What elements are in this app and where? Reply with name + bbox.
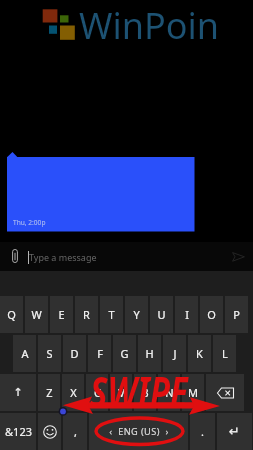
staticText: W bbox=[31, 307, 42, 322]
staticText: &123 bbox=[5, 424, 32, 439]
button[interactable]: U bbox=[150, 296, 173, 333]
button[interactable]: P bbox=[225, 296, 248, 333]
button[interactable]: J bbox=[163, 335, 186, 372]
staticText: , bbox=[74, 424, 77, 439]
button[interactable]: ‹ ENG (US) › bbox=[89, 413, 188, 450]
staticText: ‹ ENG (US) › bbox=[109, 425, 169, 438]
staticText: O bbox=[207, 307, 216, 322]
button[interactable]: Backspace bbox=[206, 374, 244, 411]
staticText: L bbox=[222, 346, 228, 361]
button[interactable]: Z bbox=[38, 374, 60, 411]
button[interactable]: L bbox=[213, 335, 236, 372]
button[interactable]: D bbox=[63, 335, 86, 372]
staticText: S bbox=[46, 346, 53, 361]
button[interactable]: T bbox=[100, 296, 123, 333]
staticText: Y bbox=[133, 307, 140, 322]
button[interactable]: A bbox=[13, 335, 36, 372]
button[interactable]: O bbox=[200, 296, 223, 333]
button[interactable]: E bbox=[50, 296, 73, 333]
staticText: Type a message bbox=[29, 251, 97, 263]
staticText: U bbox=[157, 307, 166, 322]
button[interactable]: W bbox=[25, 296, 48, 333]
button[interactable]: B bbox=[134, 374, 156, 411]
button[interactable]: ↵ bbox=[217, 413, 252, 450]
staticText: R bbox=[83, 307, 90, 322]
button[interactable]: . bbox=[190, 413, 215, 450]
staticText: K bbox=[196, 346, 203, 361]
button[interactable]: I bbox=[175, 296, 198, 333]
staticText: V bbox=[118, 385, 125, 400]
staticText: G bbox=[120, 346, 129, 361]
staticText: T bbox=[108, 307, 115, 322]
button[interactable]: Attach file bbox=[2, 243, 28, 269]
staticText: H bbox=[145, 346, 154, 361]
button[interactable]: G bbox=[113, 335, 136, 372]
button[interactable]: F bbox=[88, 335, 111, 372]
button[interactable]: H bbox=[138, 335, 161, 372]
button[interactable]: Y bbox=[125, 296, 148, 333]
staticText: P bbox=[233, 307, 240, 322]
staticText: Z bbox=[46, 385, 53, 400]
staticText: C bbox=[94, 385, 101, 400]
staticText: SWIPE bbox=[90, 362, 188, 421]
staticText: X bbox=[70, 385, 77, 400]
staticText: ↑ bbox=[13, 386, 23, 399]
staticText: E bbox=[58, 307, 65, 322]
button[interactable]: Emoji bbox=[38, 413, 61, 450]
staticText: Thu, 2:00p bbox=[13, 218, 46, 227]
button[interactable]: S bbox=[38, 335, 61, 372]
staticText: J bbox=[173, 346, 177, 361]
button[interactable]: N bbox=[158, 374, 180, 411]
button[interactable]: C bbox=[86, 374, 108, 411]
button[interactable]: K bbox=[188, 335, 211, 372]
staticText: WinPoin bbox=[79, 1, 220, 50]
staticText: B bbox=[141, 385, 149, 400]
button[interactable]: , bbox=[63, 413, 87, 450]
button[interactable]: R bbox=[75, 296, 98, 333]
staticText: I bbox=[185, 307, 189, 322]
staticText: ↵ bbox=[229, 424, 240, 439]
staticText: A bbox=[21, 346, 29, 361]
button[interactable]: M bbox=[182, 374, 204, 411]
button[interactable]: Send bbox=[225, 243, 252, 270]
button[interactable]: ↑ bbox=[0, 374, 36, 411]
button[interactable]: &123 bbox=[0, 413, 36, 450]
staticText: F bbox=[97, 346, 103, 361]
button[interactable]: V bbox=[110, 374, 132, 411]
staticText: M bbox=[188, 385, 198, 400]
staticText: D bbox=[70, 346, 79, 361]
staticText: Q bbox=[7, 307, 16, 322]
button[interactable]: X bbox=[62, 374, 84, 411]
staticText: N bbox=[165, 385, 174, 400]
staticText: . bbox=[201, 424, 204, 439]
button[interactable]: Q bbox=[0, 296, 23, 333]
